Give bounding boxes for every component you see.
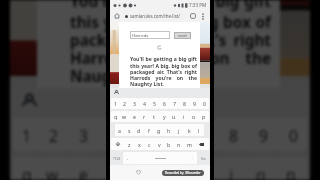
button[interactable]: Go [197, 152, 209, 164]
staticText: w [46, 163, 61, 180]
button[interactable]: 7 [169, 98, 179, 109]
button[interactable]: Tabs [189, 12, 197, 20]
staticText: r [109, 163, 118, 180]
button[interactable]: 9 [247, 118, 277, 151]
button[interactable]: u [187, 157, 217, 180]
button[interactable]: n [174, 138, 184, 150]
staticText: q [22, 163, 34, 180]
staticText: 7 [173, 100, 176, 107]
other: Contacts [114, 90, 119, 95]
button[interactable]: 4 [97, 118, 127, 151]
button[interactable]: l [194, 124, 204, 136]
staticText: 4 [143, 100, 146, 107]
button[interactable]: w [40, 157, 67, 180]
staticText: 2 [123, 100, 126, 107]
button[interactable]: p [277, 157, 307, 180]
button[interactable]: z [125, 138, 134, 150]
button[interactable]: f [144, 124, 154, 136]
button[interactable]: 2 [40, 118, 67, 151]
button[interactable]: . [188, 152, 197, 164]
button[interactable]: e [129, 111, 139, 122]
staticText: Harrods [132, 32, 149, 38]
button[interactable]: 3 [129, 98, 139, 109]
button[interactable]: 8 [179, 98, 189, 109]
button[interactable]: y [157, 157, 187, 180]
button[interactable]: r [97, 157, 127, 180]
button[interactable]: 9 [189, 98, 199, 109]
button[interactable]: o [247, 157, 277, 180]
staticText: e [79, 163, 88, 180]
button[interactable]: d [134, 124, 144, 136]
button[interactable]: 6 [159, 98, 169, 109]
button[interactable]: ?123 [111, 152, 123, 164]
staticText: Recorded by XRecorder [165, 171, 201, 175]
staticText: d [137, 127, 141, 134]
button[interactable]: Home [113, 12, 121, 20]
button[interactable]: 1 [13, 118, 40, 151]
staticText: e [133, 113, 136, 120]
button[interactable]: c [144, 138, 154, 150]
button[interactable]: 8 [217, 118, 247, 151]
button[interactable]: v [154, 138, 164, 150]
button[interactable]: 5 [127, 118, 157, 151]
button[interactable]: Harrods [132, 31, 170, 39]
button[interactable]: x [134, 138, 144, 150]
button[interactable]: 7 [187, 118, 217, 151]
staticText: u [172, 113, 176, 120]
button[interactable]: i [179, 111, 189, 122]
button[interactable]: b [164, 138, 174, 150]
staticText: 5 [139, 124, 148, 145]
button[interactable]: t [127, 157, 157, 180]
button[interactable]: g [154, 124, 164, 136]
button[interactable]: q [13, 157, 40, 180]
button[interactable]: k [184, 124, 194, 136]
button[interactable]: o [189, 111, 199, 122]
other: Home [136, 170, 141, 175]
staticText: v [158, 141, 161, 148]
staticText: r [143, 113, 146, 120]
staticText: b [167, 141, 171, 148]
button[interactable]: Space [132, 152, 188, 164]
button[interactable]: search [174, 32, 191, 39]
button[interactable]: e [67, 157, 97, 180]
staticText: t [153, 113, 155, 120]
button[interactable]: More options [199, 12, 207, 20]
button[interactable]: 3 [67, 118, 97, 151]
staticText: 7:33 PM [189, 2, 207, 8]
button[interactable]: h [164, 124, 174, 136]
button[interactable]: , [123, 152, 132, 164]
button[interactable]: 0 [199, 98, 209, 109]
button[interactable]: s [124, 124, 134, 136]
other: Contacts [22, 94, 37, 109]
staticText: w [122, 113, 127, 120]
button[interactable]: i [217, 157, 247, 180]
button[interactable]: p [199, 111, 209, 122]
button[interactable]: 5 [149, 98, 159, 109]
button[interactable]: Backspace [194, 138, 209, 150]
staticText: search [178, 34, 187, 38]
button[interactable]: 1 [111, 98, 120, 109]
button[interactable]: 4 [139, 98, 149, 109]
button[interactable]: m [184, 138, 194, 150]
staticText: i [229, 163, 235, 180]
button[interactable]: 0 [277, 118, 307, 151]
button[interactable]: 6 [157, 118, 187, 151]
button[interactable]: t [149, 111, 159, 122]
button[interactable]: j [174, 124, 184, 136]
staticText: 3 [133, 100, 136, 107]
staticText: x [138, 141, 141, 148]
button[interactable]: q [111, 111, 120, 122]
staticText: 8 [183, 100, 186, 107]
button[interactable]: 2 [120, 98, 129, 109]
button[interactable]: w [120, 111, 129, 122]
staticText: c [148, 141, 151, 148]
staticText: , [127, 155, 129, 161]
button[interactable]: u [169, 111, 179, 122]
staticText: h [167, 127, 171, 134]
staticText: 0 [289, 124, 298, 145]
button[interactable]: r [139, 111, 149, 122]
staticText: y [169, 163, 178, 180]
button[interactable]: y [159, 111, 169, 122]
button[interactable]: Shift [111, 138, 125, 150]
button[interactable]: a [115, 124, 124, 136]
